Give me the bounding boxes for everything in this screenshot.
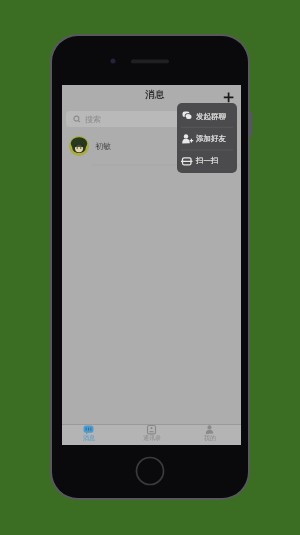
staticText: 我的 [204, 434, 216, 442]
staticText: 扫一扫 [196, 156, 219, 165]
staticText: 通讯录 [143, 434, 161, 442]
button[interactable]: 初敏 [62, 131, 241, 161]
button[interactable]: 消息 [64, 425, 113, 444]
button[interactable]: 搜索 [66, 111, 237, 127]
button[interactable] [220, 89, 238, 107]
staticText: 消息 [83, 434, 95, 442]
staticText: 搜索 [85, 114, 101, 124]
button[interactable]: 添加好友 [177, 127, 237, 149]
staticText: 发起群聊 [196, 112, 226, 121]
button[interactable]: 扫一扫 [177, 149, 237, 172]
button[interactable]: 发起群聊 [177, 105, 237, 127]
staticText: 初敏 [95, 141, 111, 151]
button[interactable]: 我的 [185, 425, 234, 444]
staticText: 消息 [145, 89, 164, 101]
button[interactable]: 通讯录 [127, 425, 176, 444]
staticText: 添加好友 [196, 134, 226, 143]
